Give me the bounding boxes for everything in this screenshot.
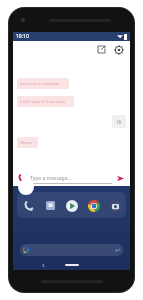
button[interactable]: Search: [20, 244, 123, 256]
button[interactable]: Send me a message: [17, 78, 69, 89]
button[interactable]: Hi: [112, 115, 126, 128]
staticText: Hi: [117, 119, 122, 125]
button[interactable]: Send: [115, 173, 126, 184]
button[interactable]: Call: [17, 173, 28, 184]
button[interactable]: Settings: [112, 43, 125, 56]
staticText: Send me a message: [20, 81, 60, 87]
button[interactable]: Back: [42, 264, 45, 267]
button[interactable]: Type a message...: [30, 173, 112, 184]
button[interactable]: New conversation: [95, 43, 108, 56]
staticText: 10:10: [16, 33, 29, 40]
button[interactable]: Camera: [106, 197, 123, 214]
button[interactable]: Play Store: [63, 197, 80, 214]
button[interactable]: Chrome: [85, 197, 102, 214]
staticText: I will reply in 5 seconds: [20, 99, 66, 105]
button[interactable]: I will reply in 5 seconds: [17, 96, 74, 107]
button[interactable]: Meow: [17, 137, 38, 148]
staticText: Type a message...: [30, 175, 72, 182]
button[interactable]: Home: [65, 264, 79, 266]
button[interactable]: Messages: [42, 197, 59, 214]
button[interactable]: Phone: [20, 197, 37, 214]
button[interactable]: Chat head: [18, 179, 34, 195]
staticText: Meow: [20, 140, 32, 146]
